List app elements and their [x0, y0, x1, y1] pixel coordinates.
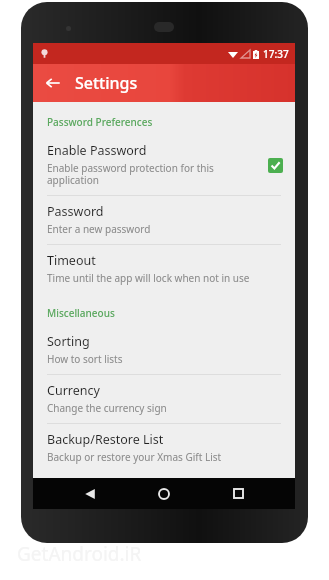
staticText: 17:37 [263, 47, 289, 61]
button[interactable]: Home [147, 478, 181, 509]
button[interactable]: Recent apps [221, 478, 255, 509]
staticText: Password [47, 203, 104, 220]
staticText: Enable password protection for this appl… [47, 161, 257, 187]
button[interactable]: Timeout [33, 245, 295, 293]
staticText: How to sort lists [47, 352, 123, 366]
button[interactable]: Enable Password [33, 135, 295, 195]
staticText: GetAndroid.iR [17, 541, 142, 567]
staticText: Time until the app will lock when not in… [47, 271, 250, 285]
button[interactable]: Backup/Restore List [33, 424, 295, 472]
staticText: Timeout [47, 252, 96, 269]
button[interactable]: Back [73, 478, 107, 509]
button[interactable]: Back [38, 68, 68, 98]
button[interactable]: Sorting [33, 326, 295, 374]
staticText: Miscellaneous [47, 306, 115, 320]
button[interactable]: Enable Password checkbox [265, 155, 285, 175]
staticText: Change the currency sign [47, 401, 167, 415]
button[interactable]: Password [33, 196, 295, 244]
staticText: Backup or restore your Xmas Gift List [47, 450, 222, 464]
staticText: Enable Password [47, 142, 147, 159]
staticText: Currency [47, 382, 100, 399]
staticText: Enter a new password [47, 222, 151, 236]
staticText: Password Preferences [47, 115, 153, 129]
staticText: Settings [75, 72, 138, 94]
button[interactable]: Currency [33, 375, 295, 423]
staticText: Backup/Restore List [47, 431, 164, 448]
staticText: Sorting [47, 333, 90, 350]
